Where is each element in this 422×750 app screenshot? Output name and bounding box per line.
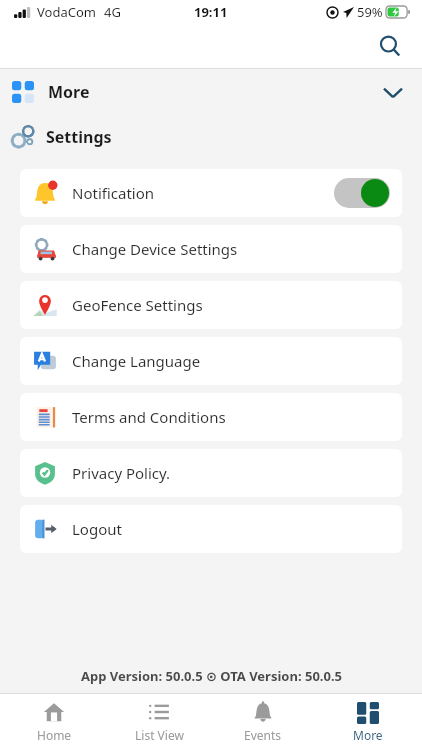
staticText: Settings [46,126,112,148]
staticText: Logout [72,519,122,539]
button[interactable]: Logout [20,505,402,553]
button[interactable]: Privacy Policy. [20,449,402,497]
staticText: 19:11 [194,3,228,21]
staticText: List View [135,727,184,743]
staticText: VodaCom [37,3,96,21]
button[interactable]: Change Device Settings [20,225,402,273]
button[interactable]: Events [213,694,313,750]
staticText: Change Device Settings [72,239,238,259]
button[interactable]: Notification toggle [334,178,390,208]
button[interactable]: Terms and Conditions [20,393,402,441]
staticText: 4G [104,3,121,21]
staticText: Notification [72,183,155,203]
staticText: 59% [357,3,383,21]
button[interactable]: More [0,69,422,115]
staticText: Change Language [72,351,201,371]
staticText: Home [37,727,72,743]
button[interactable]: Change Language [20,337,402,385]
staticText: GeoFence Settings [72,295,203,315]
staticText: Terms and Conditions [72,407,226,427]
staticText: Events [244,727,282,743]
button[interactable]: Collapse [376,75,410,109]
staticText: Privacy Policy. [72,463,171,483]
staticText: More [48,81,90,103]
staticText: App Version: 50.0.5 ⊙ OTA Version: 50.0.… [81,667,342,685]
button[interactable]: More [318,694,418,750]
button[interactable]: Notification [20,169,402,217]
button[interactable]: List View [109,694,209,750]
button[interactable]: Home [4,694,104,750]
staticText: More [353,727,383,743]
button[interactable]: GeoFence Settings [20,281,402,329]
button[interactable]: Search [372,28,408,64]
